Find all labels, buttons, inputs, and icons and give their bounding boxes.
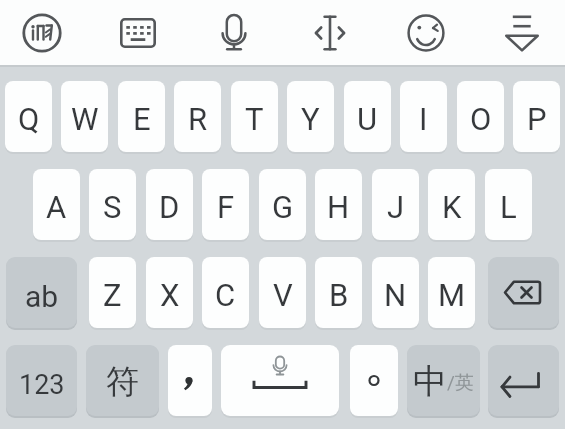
staticText: E (133, 101, 151, 137)
staticText: O (470, 101, 492, 137)
button[interactable] (168, 345, 212, 416)
button[interactable]: 符 (86, 345, 159, 416)
button[interactable]: K (428, 169, 475, 240)
staticText: /英 (447, 371, 474, 395)
button[interactable]: C (202, 257, 249, 328)
button[interactable] (488, 345, 559, 416)
button[interactable]: T (231, 81, 278, 152)
staticText: B (329, 277, 349, 313)
staticText: J (387, 189, 405, 225)
staticText: 中 (413, 360, 447, 403)
staticText: T (245, 101, 264, 137)
staticText: F (217, 189, 235, 225)
staticText: I (419, 101, 428, 137)
staticText: L (500, 189, 517, 225)
button[interactable]: Q (5, 81, 52, 152)
staticText: V (273, 277, 293, 313)
staticText: A (46, 189, 67, 225)
staticText: X (160, 277, 180, 313)
button[interactable]: D (146, 169, 193, 240)
button[interactable] (93, 0, 183, 65)
button[interactable]: S (89, 169, 136, 240)
button[interactable]: V (259, 257, 306, 328)
button[interactable]: R (174, 81, 221, 152)
button[interactable]: L (485, 169, 532, 240)
staticText: S (103, 189, 122, 225)
staticText: Y (301, 101, 320, 137)
staticText: C (215, 277, 236, 313)
button[interactable]: ab (6, 257, 77, 328)
staticText: ab (25, 279, 59, 314)
button[interactable]: B (315, 257, 362, 328)
button[interactable]: A (33, 169, 80, 240)
button[interactable]: I (400, 81, 447, 152)
staticText: N (384, 277, 407, 313)
button[interactable]: F (202, 169, 249, 240)
staticText: D (159, 189, 180, 225)
button[interactable]: G (259, 169, 306, 240)
staticText: 123 (19, 369, 65, 401)
staticText: W (71, 101, 99, 137)
button[interactable]: 123 (6, 345, 77, 416)
button[interactable] (350, 345, 398, 416)
staticText: M (438, 277, 466, 313)
staticText: H (327, 189, 350, 225)
button[interactable] (221, 345, 339, 416)
button[interactable]: Z (89, 257, 136, 328)
button[interactable] (477, 0, 565, 65)
button[interactable]: P (513, 81, 560, 152)
button[interactable] (0, 0, 87, 65)
staticText: K (442, 189, 462, 225)
button[interactable]: H (315, 169, 362, 240)
staticText: Z (103, 277, 122, 313)
staticText: R (188, 101, 208, 137)
staticText: 符 (106, 361, 139, 403)
staticText: G (272, 189, 294, 225)
button[interactable]: O (457, 81, 504, 152)
button[interactable] (488, 257, 559, 328)
button[interactable]: E (118, 81, 165, 152)
button[interactable]: Y (287, 81, 334, 152)
button[interactable] (285, 0, 375, 65)
button[interactable] (189, 0, 279, 65)
staticText: P (527, 101, 547, 137)
staticText: U (357, 101, 378, 137)
button[interactable]: J (372, 169, 419, 240)
button[interactable] (381, 0, 471, 65)
staticText: Q (18, 101, 40, 137)
button[interactable]: M (428, 257, 475, 328)
button[interactable]: W (61, 81, 108, 152)
button[interactable]: U (344, 81, 391, 152)
button[interactable]: N (372, 257, 419, 328)
button[interactable]: 中 (407, 345, 480, 416)
button[interactable]: X (146, 257, 193, 328)
